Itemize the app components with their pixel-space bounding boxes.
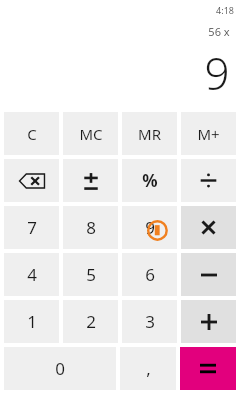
staticText: % (142, 169, 158, 192)
button[interactable]: 8 (63, 206, 118, 249)
button[interactable]: 4 (4, 253, 59, 296)
staticText: 4:18 (216, 4, 234, 16)
button[interactable]: MC (63, 112, 118, 155)
button[interactable]: 1 (4, 300, 59, 343)
button[interactable]: Multiply (181, 206, 236, 249)
staticText: , (146, 357, 151, 380)
staticText: 3 (145, 310, 155, 333)
button[interactable]: Divide (181, 159, 236, 202)
button[interactable]: MR (122, 112, 177, 155)
staticText: 56 x (208, 24, 230, 39)
button[interactable]: 5 (63, 253, 118, 296)
button[interactable]: Plus (181, 300, 236, 343)
button[interactable]: Minus (181, 253, 236, 296)
staticText: MC (79, 124, 103, 144)
staticText: 4 (27, 263, 37, 286)
staticText: 1 (27, 310, 37, 333)
staticText: 0 (55, 357, 65, 380)
staticText: MR (138, 124, 161, 144)
button[interactable]: 9 (122, 206, 177, 249)
button[interactable]: Backspace (4, 159, 59, 202)
button[interactable]: 6 (122, 253, 177, 296)
button[interactable]: Equals (180, 347, 236, 390)
button[interactable]: 7 (4, 206, 59, 249)
staticText: 6 (145, 263, 155, 286)
staticText: 8 (86, 216, 96, 239)
button[interactable]: Plus minus sign (63, 159, 118, 202)
staticText: 2 (86, 310, 96, 333)
button[interactable]: 3 (122, 300, 177, 343)
staticText: 7 (27, 216, 37, 239)
button[interactable]: C (4, 112, 59, 155)
staticText: M+ (197, 124, 220, 144)
button[interactable]: % (122, 159, 177, 202)
staticText: 5 (86, 263, 96, 286)
button[interactable]: 0 (4, 347, 116, 390)
button[interactable]: , (120, 347, 176, 390)
button[interactable]: M+ (181, 112, 236, 155)
button[interactable]: 2 (63, 300, 118, 343)
staticText: C (27, 124, 37, 144)
staticText: 9 (204, 43, 230, 103)
staticText: 9 (145, 216, 155, 239)
